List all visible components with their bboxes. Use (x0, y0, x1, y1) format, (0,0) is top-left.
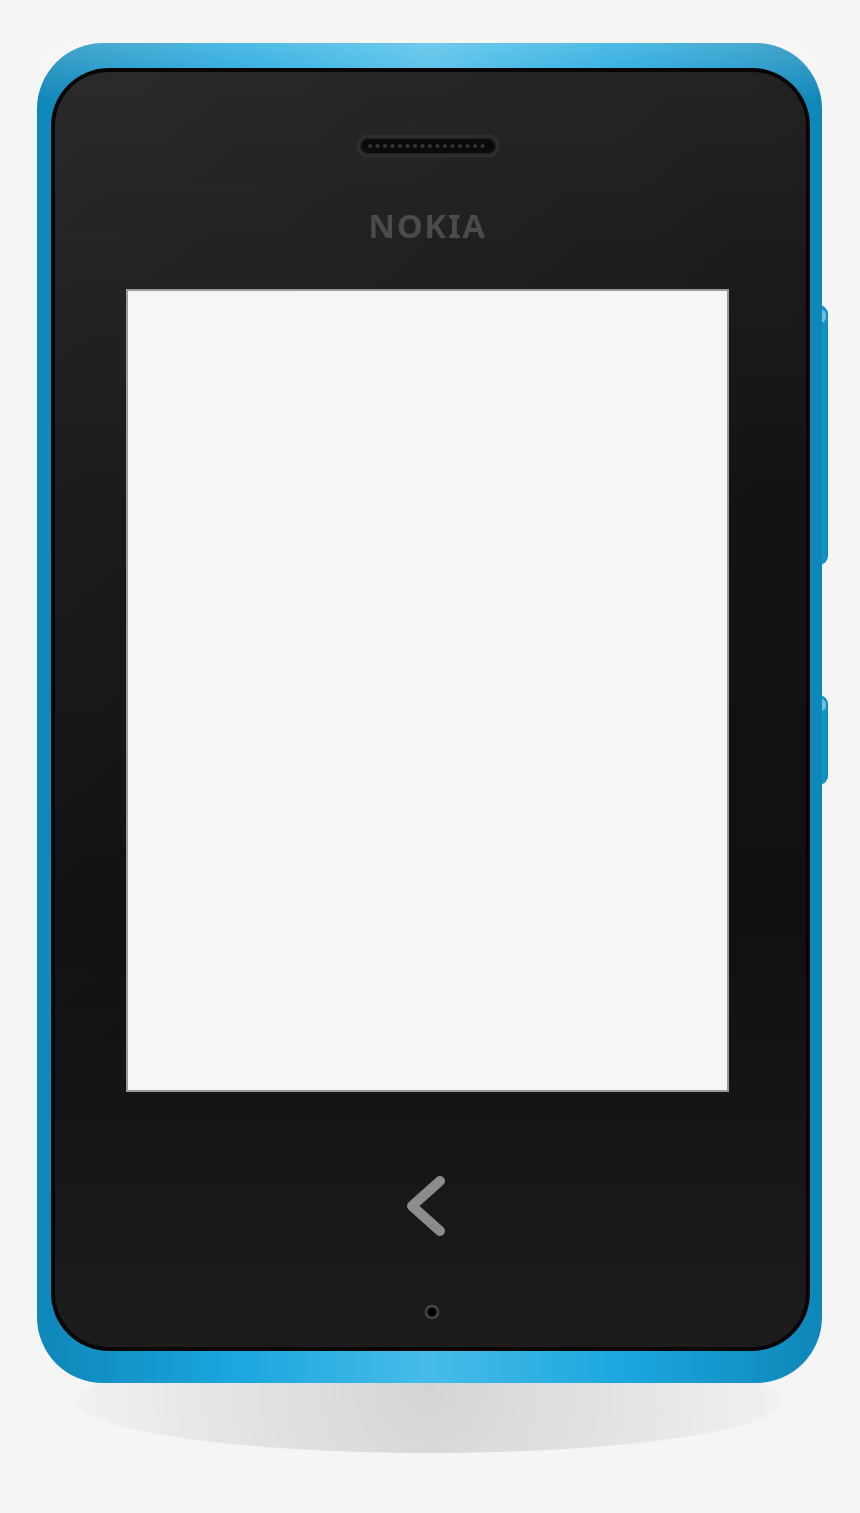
staticText: NOKIA (368, 203, 487, 239)
other: Nokia phone device frame (0, 0, 860, 1513)
button[interactable]: Power (800, 695, 828, 785)
button[interactable]: Volume (800, 305, 828, 565)
button[interactable]: Back (370, 1150, 490, 1262)
